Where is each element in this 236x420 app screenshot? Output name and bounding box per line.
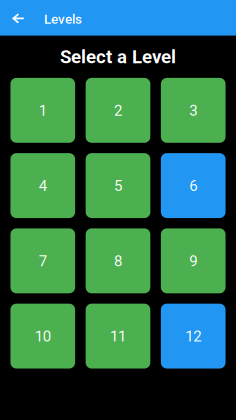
button[interactable]: 7 (10, 228, 75, 293)
button[interactable]: 5 (86, 153, 150, 218)
staticText: Select a Level (60, 46, 176, 68)
button[interactable]: 8 (86, 228, 150, 293)
button[interactable]: Back (0, 0, 36, 36)
staticText: 7 (39, 252, 47, 270)
button[interactable]: 11 (86, 304, 150, 368)
staticText: 11 (110, 328, 126, 345)
button[interactable]: 6 (161, 153, 226, 218)
button[interactable]: 10 (10, 304, 75, 368)
button[interactable]: 1 (10, 78, 75, 143)
button[interactable]: 9 (161, 228, 226, 293)
button[interactable]: 12 (161, 304, 226, 368)
staticText: 2 (114, 102, 122, 120)
button[interactable]: Levels (36, 0, 236, 36)
staticText: 10 (35, 328, 51, 345)
staticText: Levels (44, 11, 82, 27)
button[interactable]: 2 (86, 78, 150, 143)
button[interactable]: 3 (161, 78, 226, 143)
button[interactable]: 4 (10, 153, 75, 218)
staticText: 9 (189, 252, 197, 270)
staticText: 5 (114, 177, 122, 195)
staticText: 1 (39, 102, 47, 120)
staticText: 6 (189, 177, 197, 195)
staticText: 12 (185, 328, 201, 345)
staticText: 4 (39, 177, 47, 195)
staticText: 8 (114, 252, 122, 270)
staticText: 3 (189, 102, 197, 120)
